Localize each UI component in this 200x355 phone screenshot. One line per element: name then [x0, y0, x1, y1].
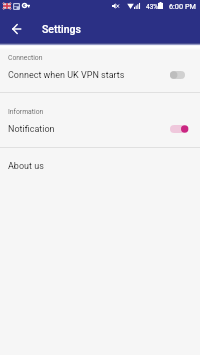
button[interactable]: Back: [0, 14, 32, 43]
staticText: About us: [8, 161, 44, 172]
button[interactable]: Connect when UK VPN starts: [0, 62, 200, 88]
staticText: Connect when UK VPN starts: [8, 70, 125, 81]
staticText: Settings: [42, 23, 81, 35]
staticText: Connection: [8, 54, 43, 62]
staticText: Notification: [8, 124, 55, 135]
staticText: Information: [8, 108, 44, 116]
staticText: 6:00 PM: [169, 2, 196, 11]
button[interactable]: About us: [0, 153, 200, 179]
staticText: 43%: [146, 3, 159, 11]
button[interactable]: Notification: [0, 116, 200, 142]
